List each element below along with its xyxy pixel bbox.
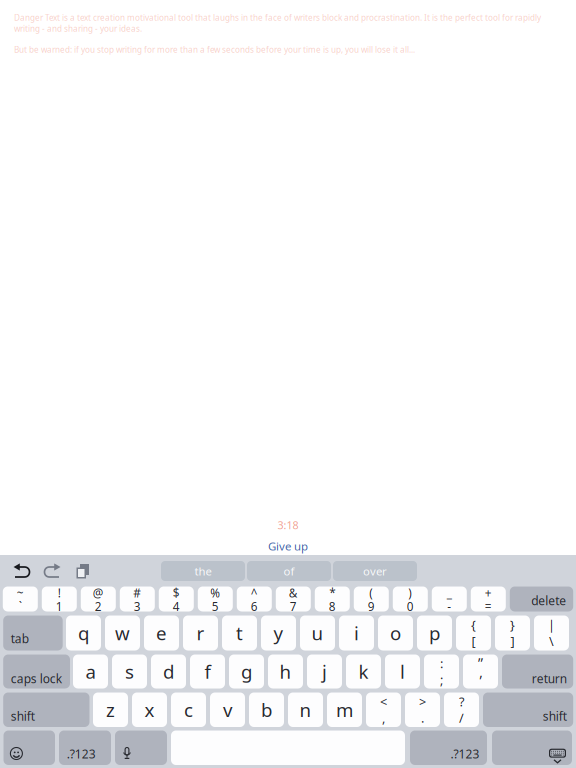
staticText: f: [204, 659, 210, 684]
button[interactable]: >: [405, 692, 440, 727]
staticText: v: [223, 697, 232, 722]
button[interactable]: o: [378, 615, 413, 650]
button[interactable]: @: [81, 586, 116, 611]
button[interactable]: shift: [483, 692, 573, 727]
staticText: ;: [440, 671, 443, 688]
button[interactable]: &: [276, 586, 311, 611]
button[interactable]: +: [471, 586, 506, 611]
staticText: ): [408, 585, 412, 601]
button[interactable]: %: [198, 586, 233, 611]
button[interactable]: Dictation: [115, 730, 167, 765]
staticText: #: [133, 585, 141, 601]
button[interactable]: g: [229, 654, 264, 688]
staticText: =: [485, 598, 492, 614]
button[interactable]: Redo: [44, 563, 61, 580]
button[interactable]: n: [288, 692, 323, 727]
staticText: tab: [11, 630, 29, 647]
button[interactable]: Undo: [13, 563, 30, 580]
staticText: delete: [531, 592, 566, 609]
button[interactable]: .?123: [59, 730, 111, 765]
button[interactable]: _: [432, 586, 467, 611]
staticText: shift: [11, 708, 35, 724]
button[interactable]: .?123: [410, 730, 487, 765]
button[interactable]: Emoji: [3, 730, 55, 765]
staticText: $: [173, 585, 180, 601]
staticText: return: [532, 670, 567, 687]
button[interactable]: |: [534, 615, 569, 650]
button[interactable]: k: [346, 654, 381, 688]
button[interactable]: c: [171, 692, 206, 727]
button[interactable]: v: [210, 692, 245, 727]
staticText: s: [125, 659, 134, 684]
button[interactable]: y: [261, 615, 296, 650]
button[interactable]: ^: [237, 586, 272, 611]
button[interactable]: l: [385, 654, 420, 688]
button[interactable]: x: [132, 692, 167, 727]
button[interactable]: caps lock: [3, 654, 70, 688]
staticText: z: [106, 697, 115, 722]
button[interactable]: u: [300, 615, 335, 650]
button[interactable]: ): [393, 586, 428, 611]
staticText: 2: [95, 598, 102, 614]
button[interactable]: delete: [510, 586, 573, 611]
button[interactable]: [171, 730, 405, 765]
button[interactable]: i: [339, 615, 374, 650]
button[interactable]: of: [247, 561, 331, 581]
staticText: ?: [459, 693, 464, 710]
button[interactable]: j: [307, 654, 342, 688]
button[interactable]: *: [315, 586, 350, 611]
button[interactable]: (: [354, 586, 389, 611]
staticText: t: [236, 620, 243, 646]
staticText: ~: [17, 585, 24, 601]
button[interactable]: a: [73, 654, 108, 688]
button[interactable]: Give up: [258, 540, 318, 552]
staticText: 6: [251, 598, 258, 614]
button[interactable]: :: [424, 654, 459, 688]
staticText: over: [363, 563, 387, 579]
button[interactable]: shift: [3, 692, 89, 727]
button[interactable]: h: [268, 654, 303, 688]
staticText: k: [358, 659, 368, 684]
button[interactable]: {: [456, 615, 491, 650]
staticText: \: [549, 632, 554, 650]
button[interactable]: tab: [3, 615, 63, 650]
button[interactable]: <: [366, 692, 401, 727]
button[interactable]: Hide Keyboard: [492, 730, 572, 765]
button[interactable]: the: [161, 561, 245, 581]
button[interactable]: q: [66, 615, 101, 650]
staticText: l: [400, 659, 405, 684]
button[interactable]: !: [42, 586, 77, 611]
button[interactable]: r: [183, 615, 218, 650]
button[interactable]: e: [144, 615, 179, 650]
staticText: .?123: [450, 746, 479, 762]
staticText: shift: [543, 708, 567, 724]
button[interactable]: Paste: [75, 563, 91, 580]
button[interactable]: w: [105, 615, 140, 650]
staticText: 8: [329, 598, 336, 614]
staticText: of: [283, 563, 294, 579]
staticText: |: [548, 616, 555, 634]
button[interactable]: b: [249, 692, 284, 727]
button[interactable]: s: [112, 654, 147, 688]
button[interactable]: z: [93, 692, 128, 727]
staticText: g: [241, 659, 252, 684]
button[interactable]: t: [222, 615, 257, 650]
button[interactable]: f: [190, 654, 225, 688]
button[interactable]: m: [327, 692, 362, 727]
button[interactable]: return: [502, 654, 573, 688]
button[interactable]: $: [159, 586, 194, 611]
staticText: !: [58, 585, 61, 601]
button[interactable]: #: [120, 586, 155, 611]
staticText: But be warned: if you stop writing for m…: [14, 44, 415, 55]
button[interactable]: }: [495, 615, 530, 650]
staticText: j: [322, 659, 327, 684]
button[interactable]: over: [333, 561, 417, 581]
staticText: >: [419, 693, 426, 710]
button[interactable]: ~: [3, 586, 38, 611]
button[interactable]: p: [417, 615, 452, 650]
button[interactable]: ”: [463, 654, 498, 688]
button[interactable]: d: [151, 654, 186, 688]
button[interactable]: ?: [444, 692, 479, 727]
staticText: m: [336, 697, 353, 722]
staticText: Give up: [268, 538, 308, 554]
